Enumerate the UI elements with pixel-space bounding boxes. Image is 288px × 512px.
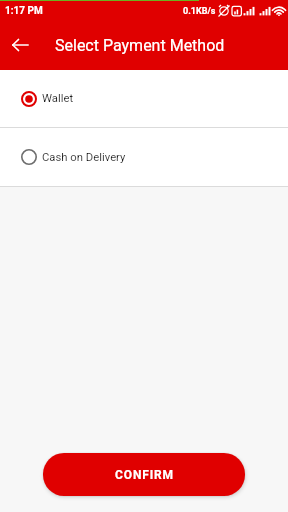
staticText: 0.1KB/s — [183, 6, 216, 17]
staticText: Wallet — [42, 92, 74, 105]
staticText: 1:17 PM — [5, 5, 43, 17]
button[interactable]: Wallet — [0, 70, 288, 127]
staticText: Select Payment Method — [55, 36, 225, 55]
staticText: CONFIRM — [115, 468, 174, 482]
button[interactable]: Back — [4, 29, 36, 61]
button[interactable]: CONFIRM — [43, 453, 245, 496]
button[interactable]: Cash on Delivery — [0, 128, 288, 186]
staticText: Cash on Delivery — [42, 151, 126, 164]
